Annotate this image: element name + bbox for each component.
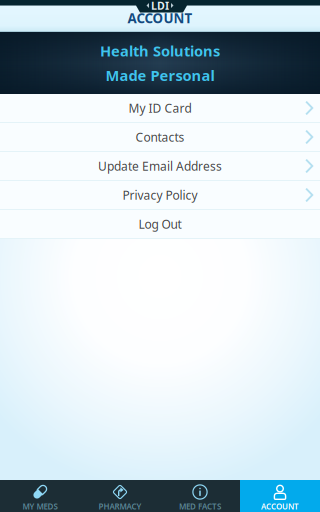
staticText: Privacy Policy: [122, 187, 197, 203]
staticText: Log Out: [138, 216, 181, 232]
staticText: My ID Card: [128, 100, 191, 116]
button[interactable]: MED FACTS: [160, 480, 240, 512]
button[interactable]: Log Out: [0, 210, 320, 238]
button[interactable]: Privacy Policy: [0, 181, 320, 209]
staticText: MY MEDS: [22, 501, 57, 512]
staticText: ACCOUNT: [261, 501, 299, 512]
staticText: Update Email Address: [98, 158, 222, 174]
staticText: Made Personal: [105, 65, 214, 85]
button[interactable]: MY MEDS: [0, 480, 80, 512]
staticText: MED FACTS: [179, 501, 221, 512]
staticText: Health Solutions: [100, 41, 220, 60]
staticText: LDI: [151, 0, 169, 13]
staticText: PHARMACY: [98, 501, 141, 512]
staticText: Contacts: [135, 129, 184, 145]
button[interactable]: ACCOUNT: [240, 480, 320, 512]
button[interactable]: Contacts: [0, 123, 320, 151]
staticText: ACCOUNT: [127, 9, 192, 27]
button[interactable]: Update Email Address: [0, 152, 320, 180]
button[interactable]: PHARMACY: [80, 480, 160, 512]
button[interactable]: My ID Card: [0, 94, 320, 122]
